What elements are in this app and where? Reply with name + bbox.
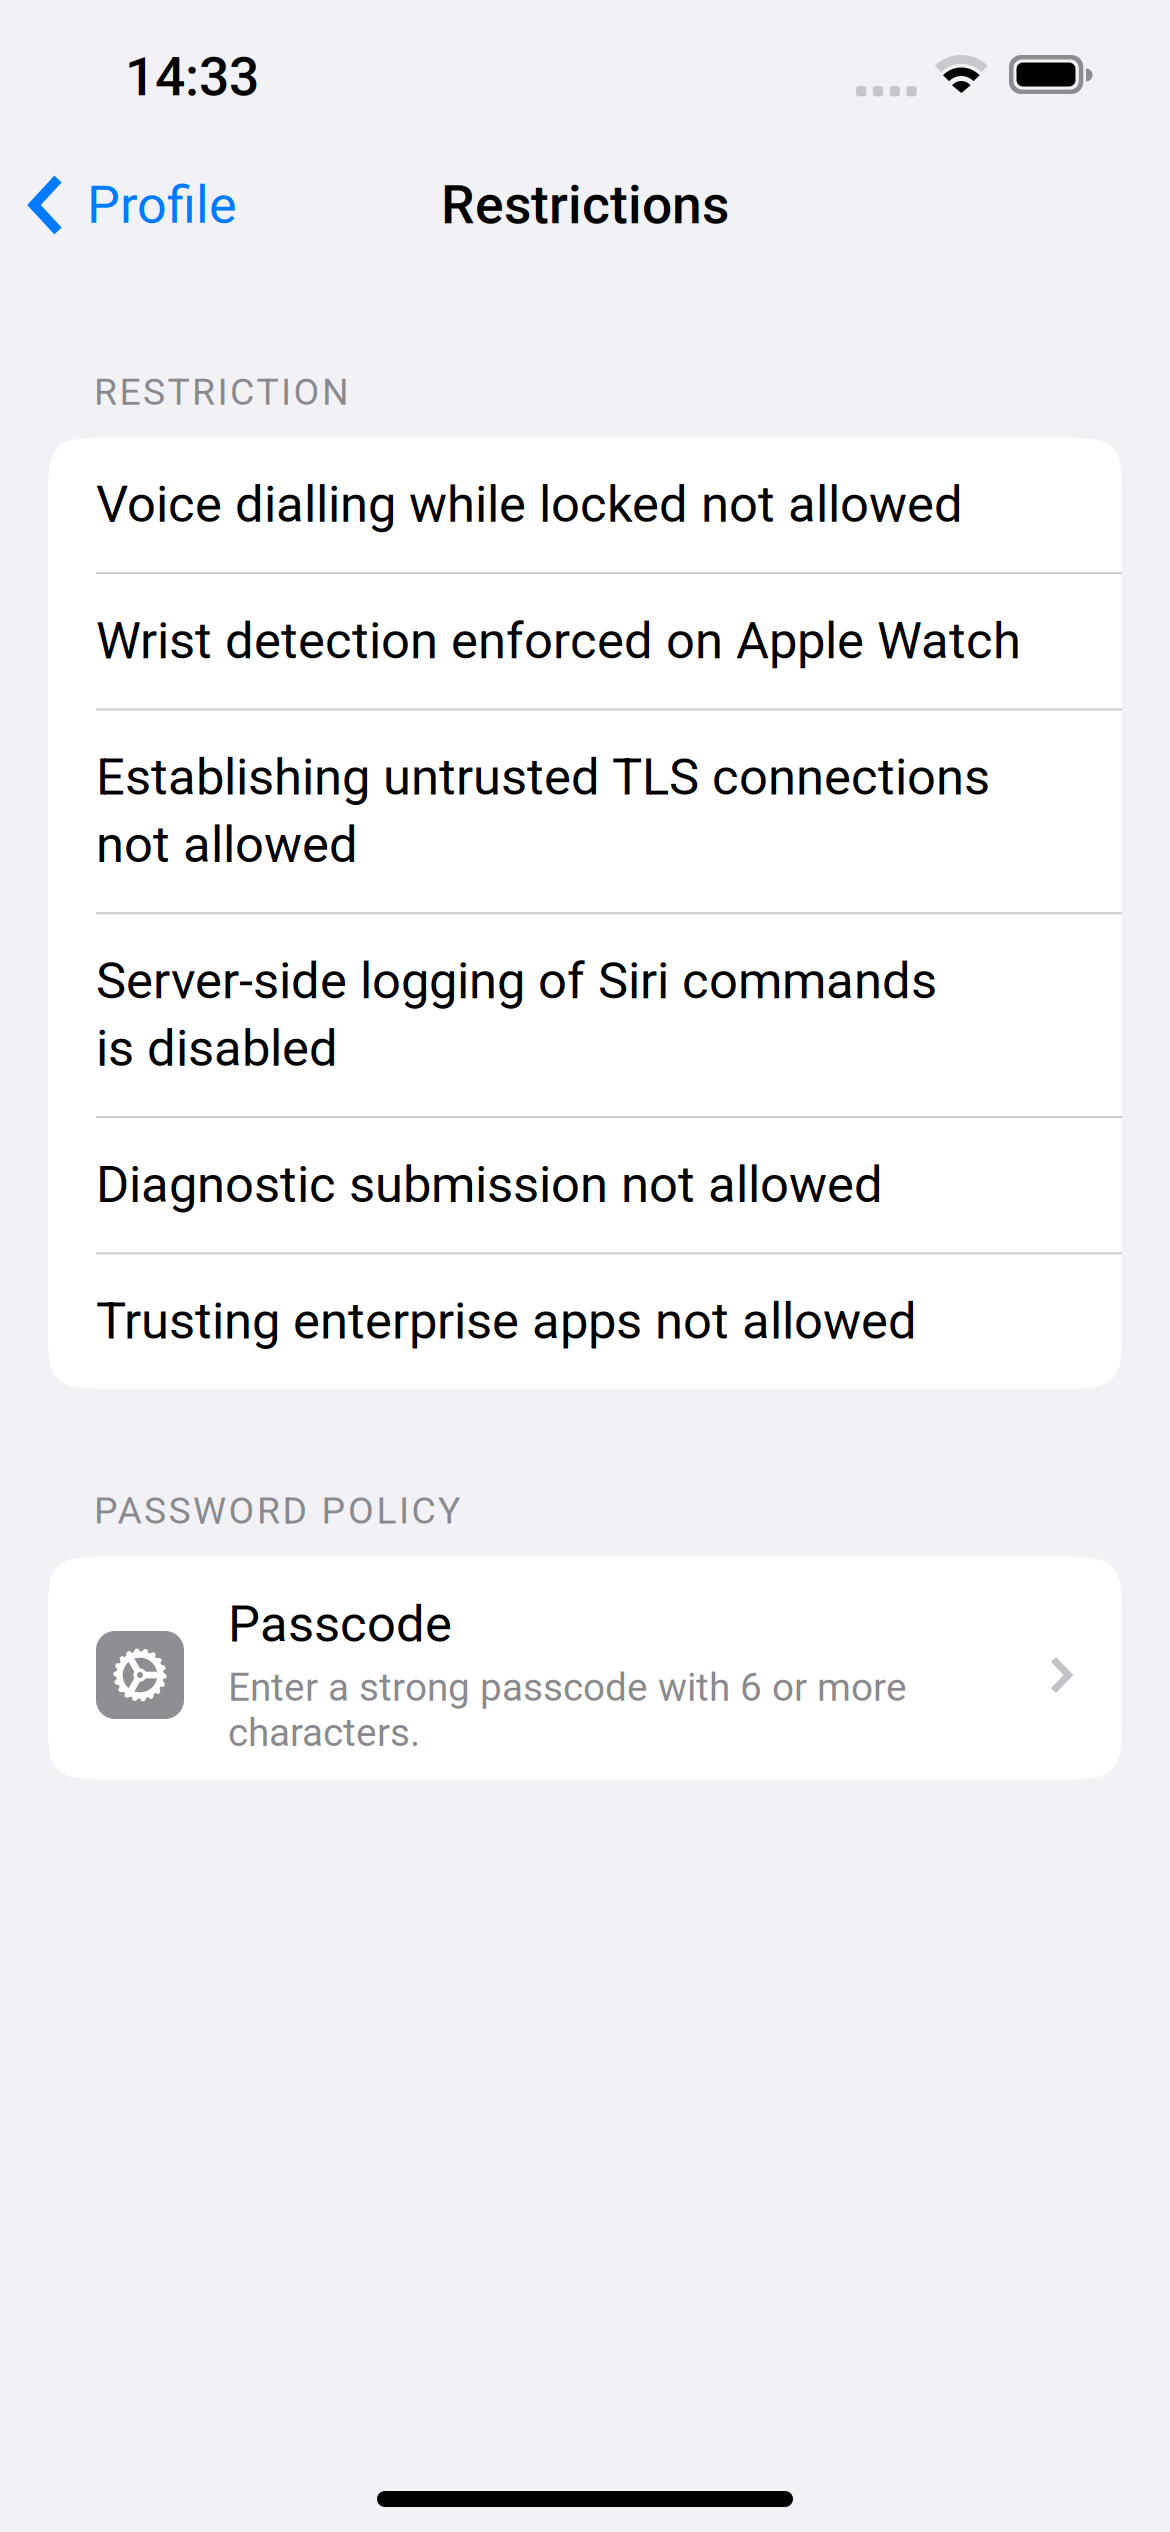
button[interactable]: Passcode xyxy=(48,1556,1122,1779)
staticText: Wrist detection enforced on Apple Watch xyxy=(96,611,1021,670)
button[interactable]: Profile xyxy=(0,146,261,264)
staticText: Restrictions xyxy=(441,174,729,236)
staticText: Passcode xyxy=(228,1594,452,1654)
staticText: Establishing untrusted TLS connections n… xyxy=(96,747,990,874)
staticText: Profile xyxy=(87,174,237,235)
staticText: Enter a strong passcode with 6 or more c… xyxy=(228,1665,907,1755)
staticText: Diagnostic submission not allowed xyxy=(96,1155,883,1214)
staticText: RESTRICTION xyxy=(94,370,349,414)
staticText: PASSWORD POLICY xyxy=(94,1489,460,1532)
staticText: Trusting enterprise apps not allowed xyxy=(96,1291,917,1351)
staticText: 14:33 xyxy=(125,46,259,108)
staticText: Voice dialling while locked not allowed xyxy=(96,475,963,534)
staticText: Server-side logging of Siri commands is … xyxy=(96,951,937,1078)
